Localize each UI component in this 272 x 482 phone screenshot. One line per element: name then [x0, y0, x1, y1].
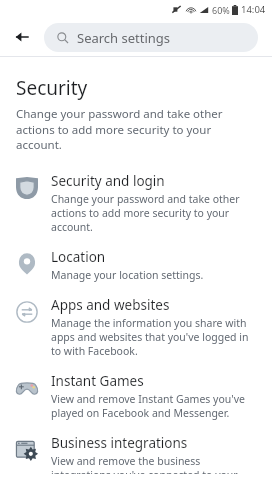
button[interactable]: Location: [0, 242, 272, 290]
button[interactable]: Instant Games: [0, 366, 272, 428]
button[interactable]: Search settings: [44, 23, 258, 52]
staticText: Manage the information you share with ap…: [51, 316, 256, 358]
staticText: Security: [16, 75, 88, 101]
button[interactable]: Security and login: [0, 166, 272, 242]
staticText: Location: [51, 248, 106, 266]
staticText: Security and login: [51, 172, 165, 190]
staticText: Business integrations: [51, 434, 188, 452]
button[interactable]: Back: [8, 23, 36, 51]
staticText: Change your password and take other acti…: [16, 106, 254, 152]
staticText: Manage your location settings.: [51, 268, 204, 282]
button[interactable]: Business integrations: [0, 428, 272, 482]
staticText: View and remove Instant Games you've pla…: [51, 392, 256, 420]
staticText: View and remove the business integration…: [51, 454, 256, 474]
staticText: Search settings: [77, 29, 171, 47]
staticText: 60%: [212, 4, 230, 16]
button[interactable]: Apps and websites: [0, 290, 272, 366]
staticText: Instant Games: [51, 372, 144, 390]
staticText: 14:04: [241, 3, 266, 16]
staticText: Apps and websites: [51, 296, 170, 314]
staticText: Change your password and take other acti…: [51, 192, 256, 234]
